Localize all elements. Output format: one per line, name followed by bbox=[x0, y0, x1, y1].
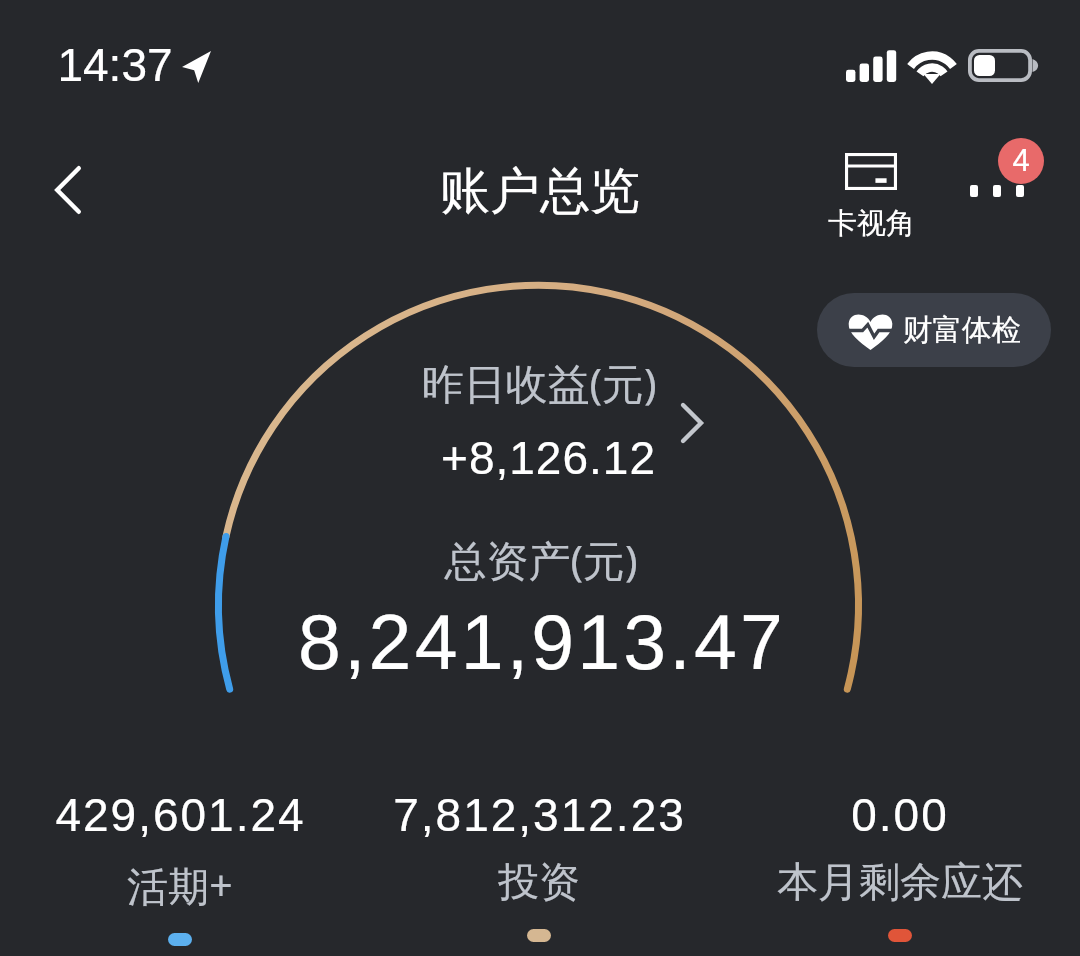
staticText: 0.00 bbox=[851, 789, 949, 840]
button[interactable]: More options bbox=[950, 150, 1054, 236]
button[interactable]: 7,812,312.23 bbox=[359, 789, 719, 942]
staticText: 财富体检 bbox=[903, 312, 1021, 349]
staticText: 429,601.24 bbox=[55, 789, 306, 840]
staticText: 本月剩余应还 bbox=[777, 857, 1023, 909]
staticText: 账户总览 bbox=[440, 160, 640, 223]
staticText: 14:37 bbox=[57, 39, 173, 90]
staticText: 4 bbox=[1012, 143, 1030, 178]
staticText: 昨日收益(元) bbox=[421, 354, 657, 411]
staticText: 卡视角 bbox=[828, 205, 915, 242]
button[interactable]: 0.00 bbox=[720, 789, 1080, 942]
button[interactable]: Yesterday earnings detail bbox=[661, 392, 723, 454]
staticText: +8,126.12 bbox=[441, 432, 656, 483]
staticText: 7,812,312.23 bbox=[393, 789, 686, 840]
button[interactable]: 卡视角 bbox=[812, 146, 930, 242]
staticText: 活期+ bbox=[127, 857, 233, 913]
button[interactable]: 429,601.24 bbox=[0, 789, 360, 946]
staticText: 总资产(元) bbox=[444, 531, 638, 588]
staticText: 8,241,913.47 bbox=[298, 599, 786, 685]
staticText: 投资 bbox=[498, 857, 580, 909]
button[interactable]: Back bbox=[28, 150, 108, 230]
button[interactable]: 财富体检 bbox=[817, 293, 1051, 367]
